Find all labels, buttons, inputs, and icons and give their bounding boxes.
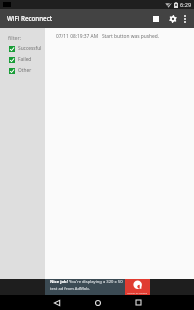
staticText: Failed	[18, 56, 32, 63]
staticText: Successful	[18, 45, 42, 52]
staticText: test ad from AdMob.	[50, 286, 90, 292]
staticText: Nice job!	[50, 279, 69, 285]
staticText: WiFi Reconnect	[7, 14, 53, 22]
button[interactable]: Other	[0, 65, 45, 76]
button[interactable]: Settings	[164, 9, 181, 28]
button[interactable]: Home	[77, 295, 118, 310]
button[interactable]: Back	[36, 295, 77, 310]
staticText: 07/11 08:19:37 AM Start button was pushe…	[56, 33, 160, 40]
staticText: Other	[18, 67, 32, 74]
staticText: filter:	[8, 34, 22, 41]
button[interactable]: More options	[178, 9, 192, 28]
staticText: You're displaying a 320 x 50	[69, 279, 123, 285]
button[interactable]: Stop	[147, 9, 164, 28]
button[interactable]: Failed	[0, 54, 45, 65]
staticText: AdMob by Google	[127, 291, 148, 294]
button[interactable]: Nice job!	[45, 279, 150, 295]
staticText: 6:29	[180, 1, 192, 9]
button[interactable]: Recents	[118, 295, 159, 310]
button[interactable]: Successful	[0, 43, 45, 54]
